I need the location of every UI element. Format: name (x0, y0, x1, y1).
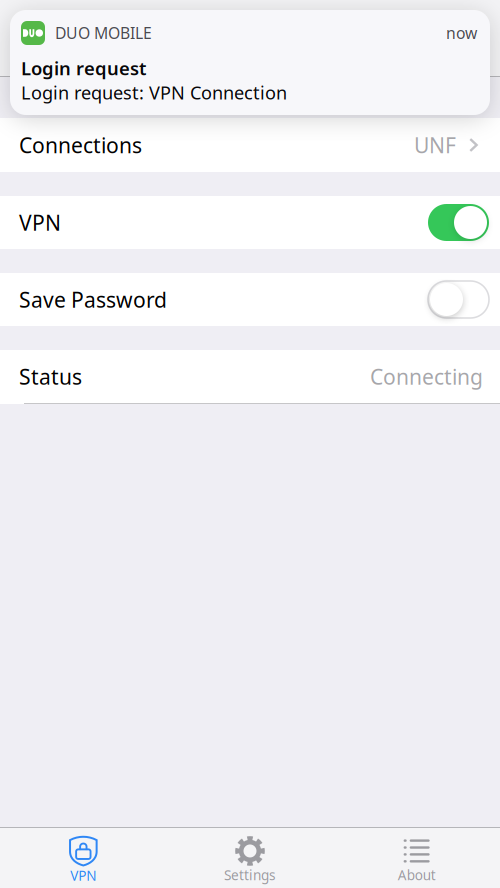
staticText: VPN (70, 866, 96, 885)
button[interactable]: Settings (167, 828, 333, 888)
staticText: Connections (19, 131, 142, 159)
staticText: Save Password (19, 285, 167, 313)
button[interactable]: VPN (0, 828, 167, 888)
staticText: DUO MOBILE (55, 23, 152, 43)
staticText: Settings (224, 866, 276, 884)
staticText: VPN (19, 208, 61, 236)
button[interactable]: VPN, on (428, 204, 489, 241)
button[interactable]: DUO MOBILE (10, 10, 490, 115)
button[interactable]: About (333, 828, 500, 888)
button[interactable]: Save Password, off (428, 281, 489, 318)
staticText: Login request: VPN Connection (21, 80, 287, 104)
staticText: Status (19, 362, 82, 390)
staticText: now (446, 23, 477, 43)
staticText: About (398, 866, 436, 884)
staticText: Login request (21, 56, 146, 80)
staticText: UNF (414, 131, 456, 159)
staticText: Connecting (370, 362, 483, 390)
button[interactable]: Connections (0, 118, 500, 172)
